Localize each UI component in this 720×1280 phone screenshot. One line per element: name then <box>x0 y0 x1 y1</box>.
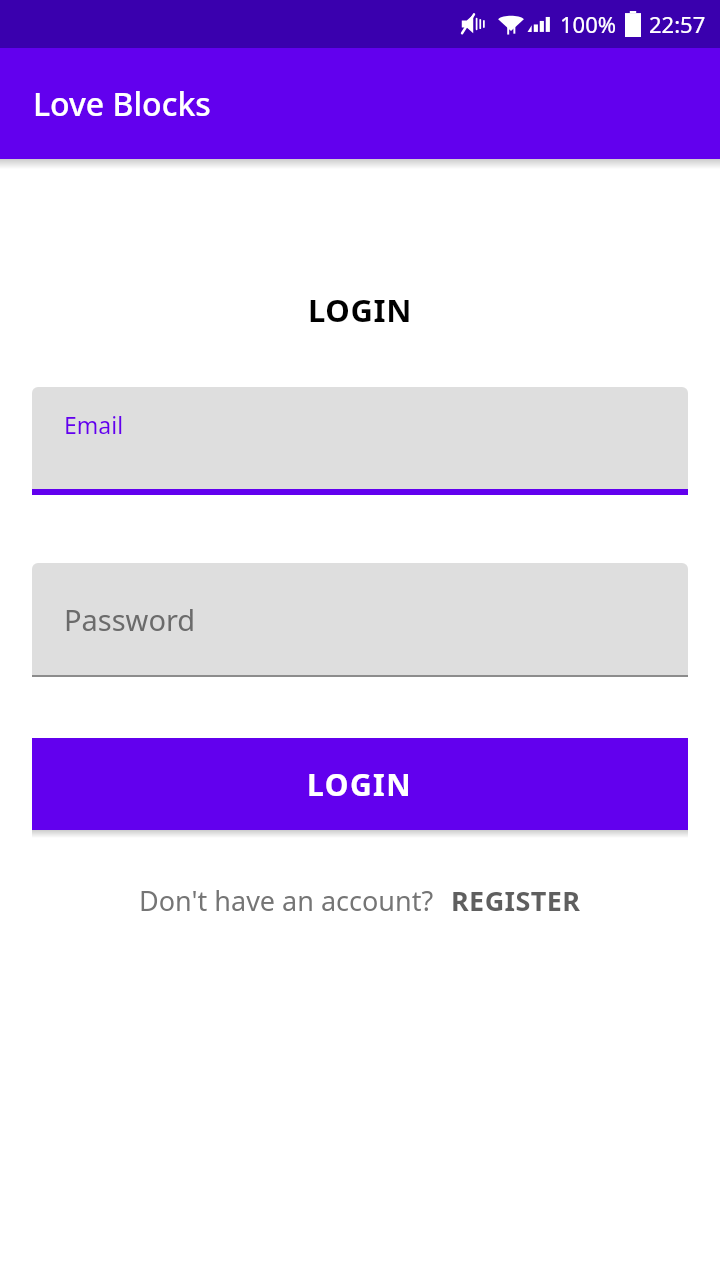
button[interactable]: REGISTER <box>451 882 581 919</box>
staticText: REGISTER <box>451 882 581 919</box>
staticText: Password <box>64 600 196 639</box>
staticText: 100% <box>560 9 617 39</box>
button[interactable]: LOGIN <box>32 738 688 830</box>
staticText: Don't have an account? <box>139 882 434 919</box>
staticText: LOGIN <box>308 289 412 331</box>
button[interactable]: Password <box>32 563 688 677</box>
staticText: LOGIN <box>307 764 413 805</box>
other: Sound off <box>461 13 487 35</box>
other: Wi-Fi <box>497 13 525 35</box>
other: Mobile signal <box>527 13 553 35</box>
staticText: Love Blocks <box>33 82 211 126</box>
staticText: Email <box>64 409 124 440</box>
button[interactable]: Email <box>32 387 688 495</box>
other: Battery full <box>625 11 641 37</box>
staticText: 22:57 <box>649 9 706 39</box>
